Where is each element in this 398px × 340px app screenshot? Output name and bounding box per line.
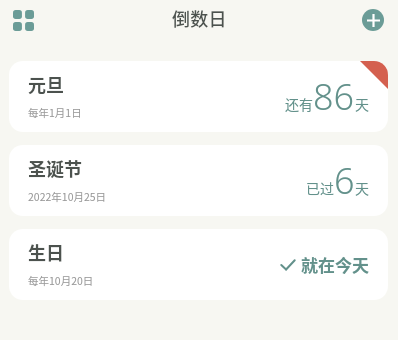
staticText: 天 xyxy=(355,94,369,114)
button[interactable]: Add xyxy=(362,9,384,31)
staticText: 圣诞节 xyxy=(28,155,82,181)
staticText: 生日 xyxy=(28,239,64,265)
staticText: 每年1月1日 xyxy=(28,105,82,120)
button[interactable]: 元旦 xyxy=(9,61,388,132)
staticText: 元旦 xyxy=(28,71,64,97)
staticText: 已过 xyxy=(306,178,334,198)
staticText: 天 xyxy=(355,178,369,198)
button[interactable]: 圣诞节 xyxy=(9,145,388,216)
staticText: 2022年10月25日 xyxy=(28,189,107,204)
staticText: 每年10月20日 xyxy=(28,273,94,288)
button[interactable]: 生日 xyxy=(9,229,388,300)
staticText: 倒数日 xyxy=(172,5,227,31)
staticText: 还有 xyxy=(285,94,313,114)
staticText: 6 xyxy=(334,156,355,205)
staticText: 86 xyxy=(313,72,355,121)
button[interactable]: Menu xyxy=(6,3,40,37)
staticText: 就在今天 xyxy=(301,252,369,277)
